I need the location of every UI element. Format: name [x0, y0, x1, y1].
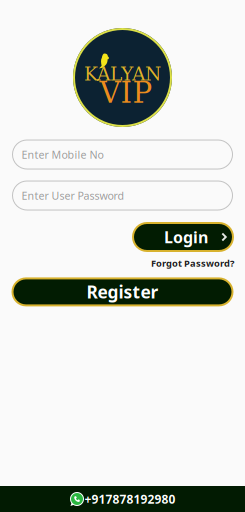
button[interactable]: +917878192980	[0, 486, 245, 512]
staticText: Enter Mobile No	[21, 147, 103, 162]
staticText: Forgot Password?	[151, 257, 234, 269]
staticText: VIP	[99, 75, 152, 109]
button[interactable]: Login	[133, 223, 233, 251]
staticText: Register	[86, 280, 158, 303]
staticText: +917878192980	[84, 491, 175, 507]
button[interactable]: Forgot Password?	[151, 257, 234, 269]
staticText: Enter User Password	[21, 188, 124, 203]
button[interactable]: Register	[12, 278, 232, 305]
staticText: KALYAN	[84, 63, 161, 85]
staticText: Login	[164, 226, 208, 248]
